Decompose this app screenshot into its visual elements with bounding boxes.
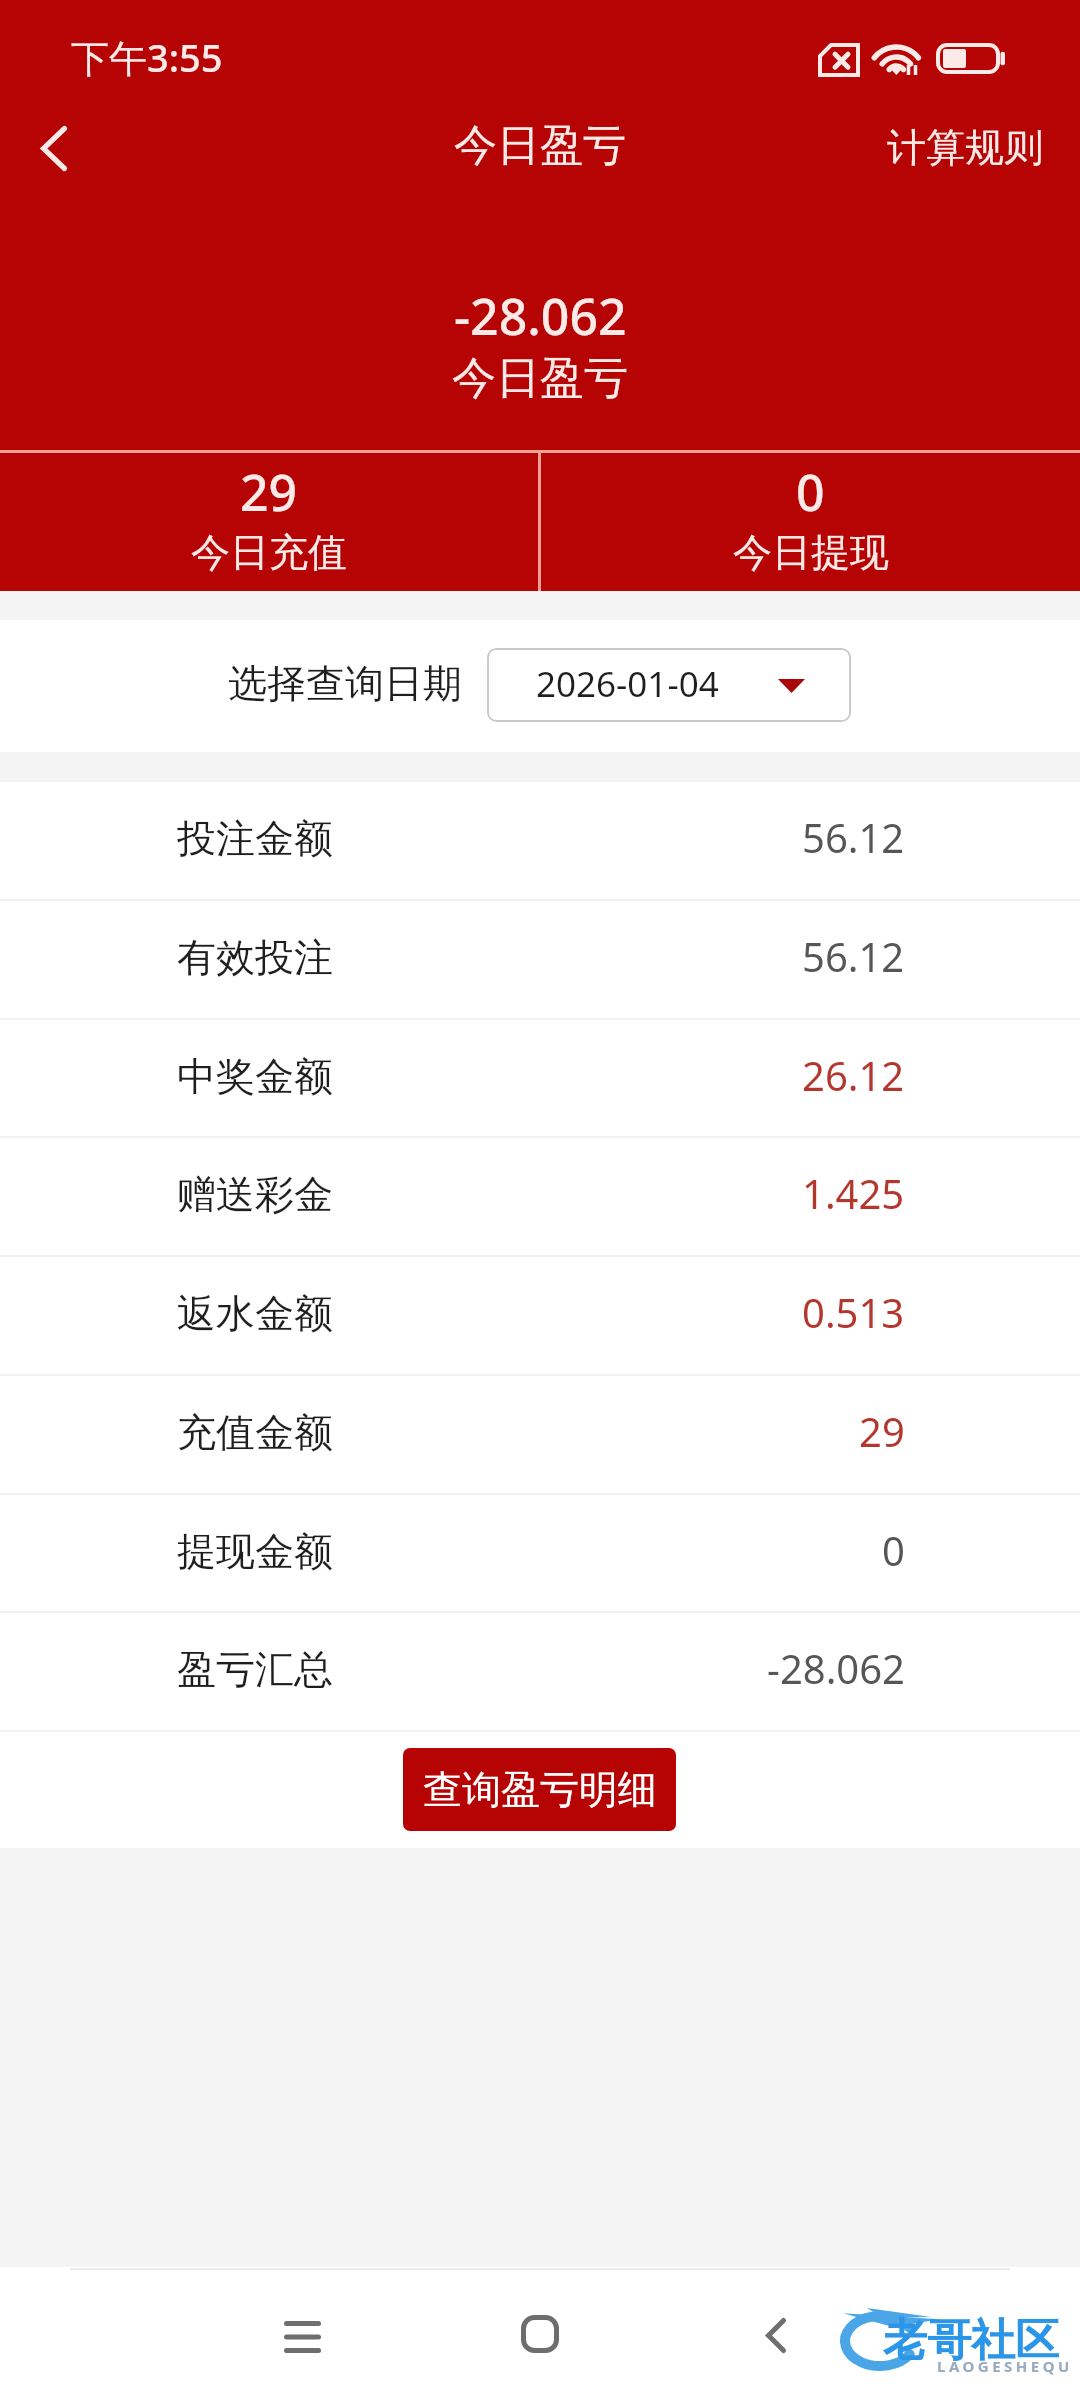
button[interactable]: 充值金额 xyxy=(0,1376,1080,1493)
button[interactable]: Back xyxy=(0,96,108,200)
button[interactable]: 2026-01-04 xyxy=(487,648,851,722)
staticText: 29 xyxy=(240,458,298,526)
button[interactable]: 查询盈亏明细 xyxy=(403,1748,676,1831)
staticText: 56.12 xyxy=(802,810,905,864)
staticText: 今日提现 xyxy=(733,528,889,577)
staticText: 56.12 xyxy=(802,929,905,983)
staticText: 0.513 xyxy=(802,1285,905,1339)
staticText: LAOGESHEQU xyxy=(937,2356,1073,2376)
button[interactable]: Back xyxy=(718,2267,834,2400)
button[interactable]: 赠送彩金 xyxy=(0,1138,1080,1255)
staticText: 盈亏汇总 xyxy=(177,1645,333,1694)
staticText: 充值金额 xyxy=(177,1408,333,1457)
button[interactable]: 中奖金额 xyxy=(0,1020,1080,1137)
staticText: 选择查询日期 xyxy=(228,659,462,708)
button[interactable]: 提现金额 xyxy=(0,1495,1080,1612)
staticText: 今日充值 xyxy=(191,528,347,577)
staticText: 今日盈亏 xyxy=(454,119,626,173)
staticText: 1.425 xyxy=(802,1166,905,1220)
staticText: 今日盈亏 xyxy=(452,351,628,406)
staticText: 提现金额 xyxy=(177,1527,333,1576)
staticText: 老哥社区 xyxy=(883,2313,1059,2368)
button[interactable]: 0 xyxy=(541,453,1080,591)
staticText: 计算规则 xyxy=(887,123,1043,172)
button[interactable]: 投注金额 xyxy=(0,782,1080,899)
button[interactable]: Recent apps xyxy=(244,2267,360,2400)
staticText: 查询盈亏明细 xyxy=(423,1765,657,1814)
staticText: 29 xyxy=(859,1404,905,1458)
staticText: -28.062 xyxy=(454,282,627,350)
button[interactable]: Home xyxy=(482,2267,598,2400)
staticText: 中奖金额 xyxy=(177,1052,333,1101)
staticText: 0 xyxy=(882,1523,905,1577)
staticText: 投注金额 xyxy=(177,814,333,863)
button[interactable]: 返水金额 xyxy=(0,1257,1080,1374)
button[interactable]: 有效投注 xyxy=(0,901,1080,1018)
button[interactable]: 29 xyxy=(0,453,538,591)
staticText: -28.062 xyxy=(767,1641,905,1695)
staticText: 2026-01-04 xyxy=(536,660,719,708)
staticText: 返水金额 xyxy=(177,1289,333,1338)
staticText: 0 xyxy=(796,458,825,526)
button[interactable]: 计算规则 xyxy=(863,105,1067,190)
staticText: 有效投注 xyxy=(177,933,333,982)
button[interactable]: 盈亏汇总 xyxy=(0,1613,1080,1730)
staticText: 26.12 xyxy=(802,1048,905,1102)
staticText: 下午3:55 xyxy=(71,31,223,83)
staticText: 赠送彩金 xyxy=(177,1170,333,1219)
